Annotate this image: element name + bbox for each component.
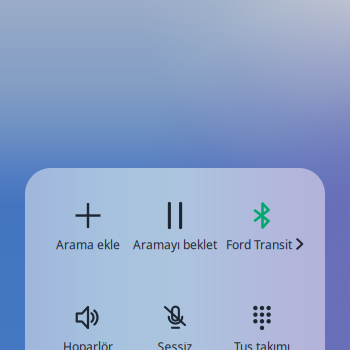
button[interactable]: Change audio route: [289, 233, 311, 255]
staticText: Arama ekle: [56, 236, 120, 252]
button[interactable]: Aramayı beklet: [123, 202, 227, 252]
staticText: Ford Transit: [226, 236, 292, 252]
button[interactable]: Ford Transit: [210, 202, 314, 252]
staticText: Hoparlör: [63, 338, 113, 350]
staticText: Aramayı beklet: [133, 236, 217, 252]
button[interactable]: Sessiz: [123, 304, 227, 350]
button[interactable]: Tuş takımı: [210, 304, 314, 350]
button[interactable]: Arama ekle: [36, 202, 140, 252]
button[interactable]: Hoparlör: [36, 304, 140, 350]
staticText: Sessiz: [157, 338, 192, 350]
staticText: Tuş takımı: [234, 338, 290, 350]
